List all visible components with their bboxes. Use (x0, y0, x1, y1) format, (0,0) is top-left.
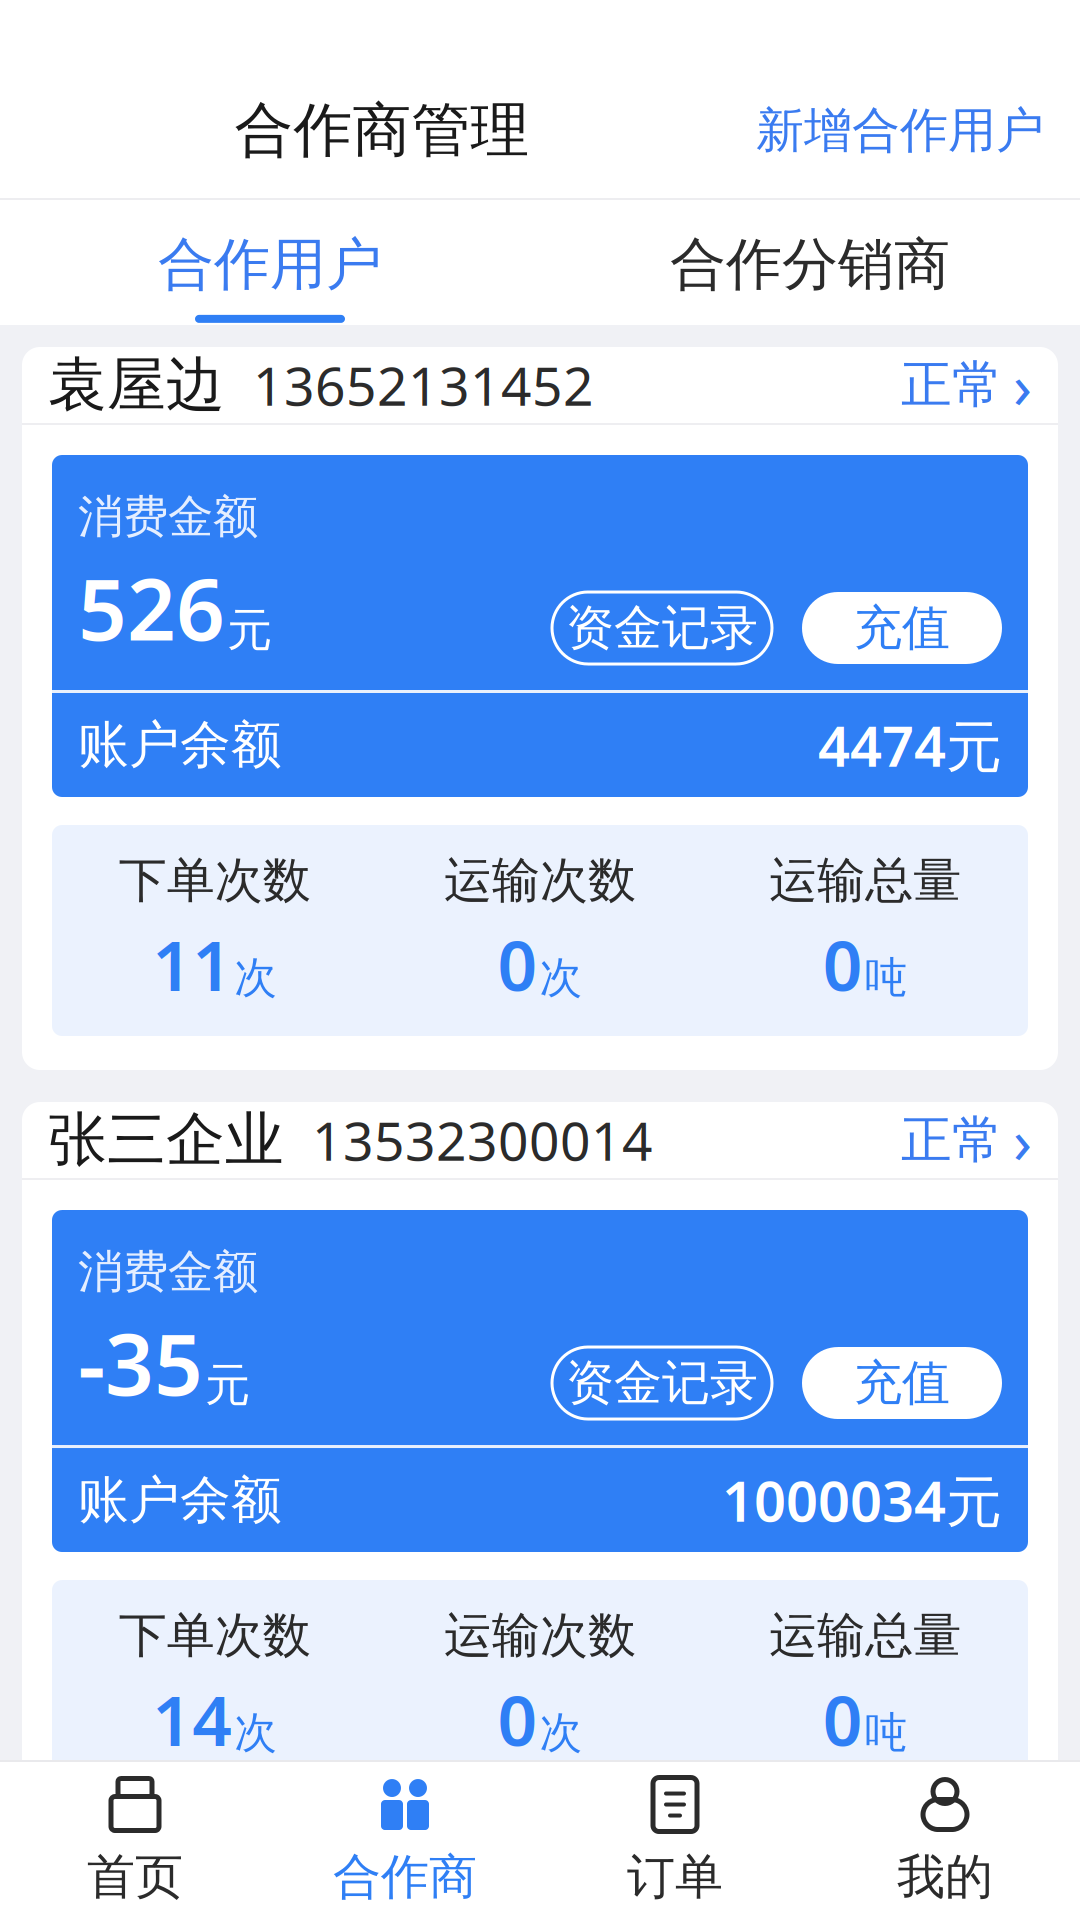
staticText: › (1013, 1099, 1032, 1181)
staticText: 资金记录 (566, 1353, 758, 1412)
staticText: 首页 (87, 1847, 183, 1906)
staticText: 次 (234, 952, 277, 1004)
staticText: 新增合作用户 (756, 101, 1044, 160)
staticText: 次 (539, 952, 582, 1004)
staticText: 526 (78, 551, 225, 664)
button[interactable]: 资金记录 (552, 592, 772, 664)
staticText: 元 (227, 602, 272, 658)
button[interactable]: 充值 (802, 592, 1002, 664)
button[interactable]: 首页 (0, 1755, 270, 1920)
staticText: 充值 (854, 1353, 950, 1412)
button[interactable]: 袁屋边 (22, 347, 1058, 423)
staticText: 资金记录 (566, 598, 758, 657)
staticText: 运输总量 (769, 1606, 961, 1665)
staticText: 运输次数 (444, 851, 636, 910)
staticText: 订单 (627, 1847, 723, 1906)
staticText: 袁屋边 (48, 349, 225, 421)
staticText: 13532300014 (312, 1105, 653, 1175)
staticText: 消费金额 (78, 1244, 258, 1300)
staticText: 合作用户 (158, 230, 382, 299)
staticText: 吨 (865, 1707, 908, 1759)
button[interactable]: 我的 (810, 1755, 1080, 1920)
button[interactable]: 合作用户 (0, 202, 540, 323)
staticText: 正常 (901, 354, 1003, 416)
staticText: 4474元 (818, 708, 1002, 782)
staticText: 正常 (901, 1109, 1003, 1171)
staticText: 0 (823, 1673, 863, 1765)
staticText: 0 (823, 918, 863, 1010)
button[interactable]: 张三企业 (22, 1102, 1058, 1178)
staticText: 运输次数 (444, 1606, 636, 1665)
button[interactable]: 新增合作用户 (742, 91, 1058, 170)
staticText: 14 (152, 1673, 232, 1765)
staticText: 合作商 (333, 1847, 477, 1906)
staticText: 合作分销商 (670, 230, 950, 299)
staticText: 13652131452 (253, 350, 594, 420)
button[interactable]: 资金记录 (552, 1347, 772, 1419)
staticText: 账户余额 (78, 714, 282, 776)
button[interactable]: 订单 (540, 1755, 810, 1920)
staticText: -35 (78, 1306, 203, 1419)
staticText: 消费金额 (78, 489, 258, 545)
staticText: 我的 (897, 1847, 993, 1906)
staticText: 下单次数 (119, 1606, 311, 1665)
button[interactable]: 充值 (802, 1347, 1002, 1419)
staticText: › (1013, 344, 1032, 426)
staticText: 账户余额 (78, 1469, 282, 1531)
staticText: 张三企业 (48, 1104, 284, 1176)
staticText: 1000034元 (722, 1463, 1002, 1537)
staticText: 合作商管理 (234, 94, 529, 167)
button[interactable]: 合作分销商 (540, 202, 1080, 323)
staticText: 次 (234, 1707, 277, 1759)
staticText: 0 (497, 918, 537, 1010)
staticText: 次 (539, 1707, 582, 1759)
staticText: 运输总量 (769, 851, 961, 910)
button[interactable]: 合作商 (270, 1755, 540, 1920)
staticText: 充值 (854, 598, 950, 657)
staticText: 吨 (865, 952, 908, 1004)
staticText: 0 (497, 1673, 537, 1765)
staticText: 11 (152, 918, 232, 1010)
staticText: 元 (205, 1357, 250, 1413)
staticText: 下单次数 (119, 851, 311, 910)
